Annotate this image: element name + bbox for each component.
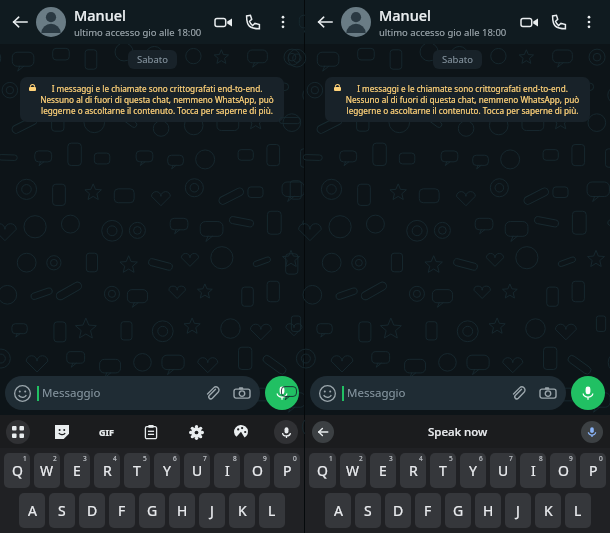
button[interactable]: Attach <box>508 383 528 403</box>
staticText: Sabato <box>442 53 473 66</box>
button[interactable]: Sabato <box>128 50 177 69</box>
button[interactable]: T <box>430 453 456 488</box>
staticText: K <box>238 501 247 520</box>
staticText: O <box>252 461 263 480</box>
staticText: A <box>28 501 37 520</box>
staticText: F <box>424 501 432 520</box>
button[interactable]: R <box>94 453 120 488</box>
button[interactable]: Emoji <box>13 384 31 402</box>
button[interactable]: R <box>400 453 426 488</box>
button[interactable]: U <box>490 453 516 488</box>
button[interactable]: Call <box>238 7 268 37</box>
button[interactable]: G <box>445 493 471 528</box>
button[interactable]: Microphone <box>581 421 603 443</box>
button[interactable]: Manuel <box>379 5 514 39</box>
staticText: U <box>192 461 203 480</box>
button[interactable]: Y <box>154 453 180 488</box>
button[interactable]: H <box>475 493 501 528</box>
button[interactable]: T <box>124 453 150 488</box>
button[interactable]: Voice message <box>265 376 299 410</box>
button[interactable]: GIF <box>94 420 118 444</box>
button[interactable]: Settings <box>184 420 208 444</box>
button[interactable]: U <box>184 453 210 488</box>
button[interactable]: W <box>34 453 60 488</box>
button[interactable]: Y <box>460 453 486 488</box>
button[interactable]: L <box>259 493 285 528</box>
button[interactable]: F <box>109 493 135 528</box>
button[interactable]: J <box>199 493 225 528</box>
staticText: T <box>439 461 447 480</box>
button[interactable]: J <box>505 493 531 528</box>
button[interactable]: E <box>370 453 396 488</box>
staticText: ultimo accesso gio alle 18:00 <box>74 26 202 39</box>
staticText: 8 <box>233 454 237 463</box>
button[interactable]: H <box>169 493 195 528</box>
staticText: 0 <box>293 454 297 463</box>
button[interactable]: Attach <box>202 383 222 403</box>
button[interactable]: Themes <box>229 420 253 444</box>
button[interactable]: A <box>19 493 45 528</box>
button[interactable]: D <box>385 493 411 528</box>
button[interactable]: Call <box>544 7 574 37</box>
staticText: A <box>334 501 343 520</box>
button[interactable]: W <box>340 453 366 488</box>
staticText: W <box>40 461 54 480</box>
button[interactable]: I <box>214 453 240 488</box>
button[interactable]: P <box>580 453 606 488</box>
button[interactable]: Emoji <box>318 384 336 402</box>
staticText: Messaggio <box>42 385 101 401</box>
staticText: D <box>393 501 404 520</box>
button[interactable]: Manuel <box>74 5 208 39</box>
button[interactable]: Keyboard apps <box>6 420 30 444</box>
button[interactable]: Back <box>312 421 334 443</box>
button[interactable]: D <box>79 493 105 528</box>
staticText: U <box>498 461 509 480</box>
button[interactable]: Camera <box>232 383 252 403</box>
button[interactable] <box>36 7 66 37</box>
button[interactable]: G <box>139 493 165 528</box>
staticText: P <box>283 461 292 480</box>
staticText: Speak now <box>428 424 488 440</box>
button[interactable]: Q <box>309 453 336 488</box>
button[interactable]: I messaggi e le chiamate sono crittograf… <box>325 77 590 122</box>
button[interactable]: I <box>520 453 546 488</box>
button[interactable]: Back <box>311 8 339 36</box>
button[interactable]: Camera <box>538 383 558 403</box>
staticText: W <box>346 461 360 480</box>
button[interactable]: I messaggi e le chiamate sono crittograf… <box>20 77 284 122</box>
button[interactable]: Emoji <box>5 376 260 410</box>
button[interactable]: P <box>274 453 300 488</box>
button[interactable]: Q <box>4 453 30 488</box>
staticText: E <box>73 461 81 480</box>
button[interactable]: Stickers <box>50 420 74 444</box>
button[interactable]: F <box>415 493 441 528</box>
button[interactable]: E <box>64 453 90 488</box>
button[interactable]: Sabato <box>433 50 482 69</box>
button[interactable]: S <box>49 493 75 528</box>
staticText: ultimo accesso gio alle 18:00 <box>379 26 507 39</box>
button[interactable]: L <box>565 493 591 528</box>
staticText: 7 <box>203 454 207 463</box>
staticText: Y <box>163 461 171 480</box>
button[interactable]: More options <box>574 7 604 37</box>
button[interactable]: K <box>229 493 255 528</box>
staticText: Q <box>12 461 23 480</box>
button[interactable]: Emoji <box>310 376 566 410</box>
staticText: R <box>409 461 418 480</box>
button[interactable]: Voice message <box>571 376 605 410</box>
button[interactable]: S <box>355 493 381 528</box>
button[interactable]: O <box>244 453 270 488</box>
button[interactable]: More options <box>268 7 298 37</box>
button[interactable]: Video call <box>208 7 238 37</box>
button[interactable]: K <box>535 493 561 528</box>
button[interactable]: Video call <box>514 7 544 37</box>
button[interactable]: A <box>325 493 351 528</box>
staticText: H <box>177 501 188 520</box>
staticText: Sabato <box>137 53 168 66</box>
button[interactable]: O <box>550 453 576 488</box>
button[interactable]: Voice input <box>274 420 298 444</box>
staticText: Q <box>317 461 328 480</box>
button[interactable]: Back <box>6 8 34 36</box>
button[interactable] <box>341 7 371 37</box>
button[interactable]: Clipboard <box>139 420 163 444</box>
